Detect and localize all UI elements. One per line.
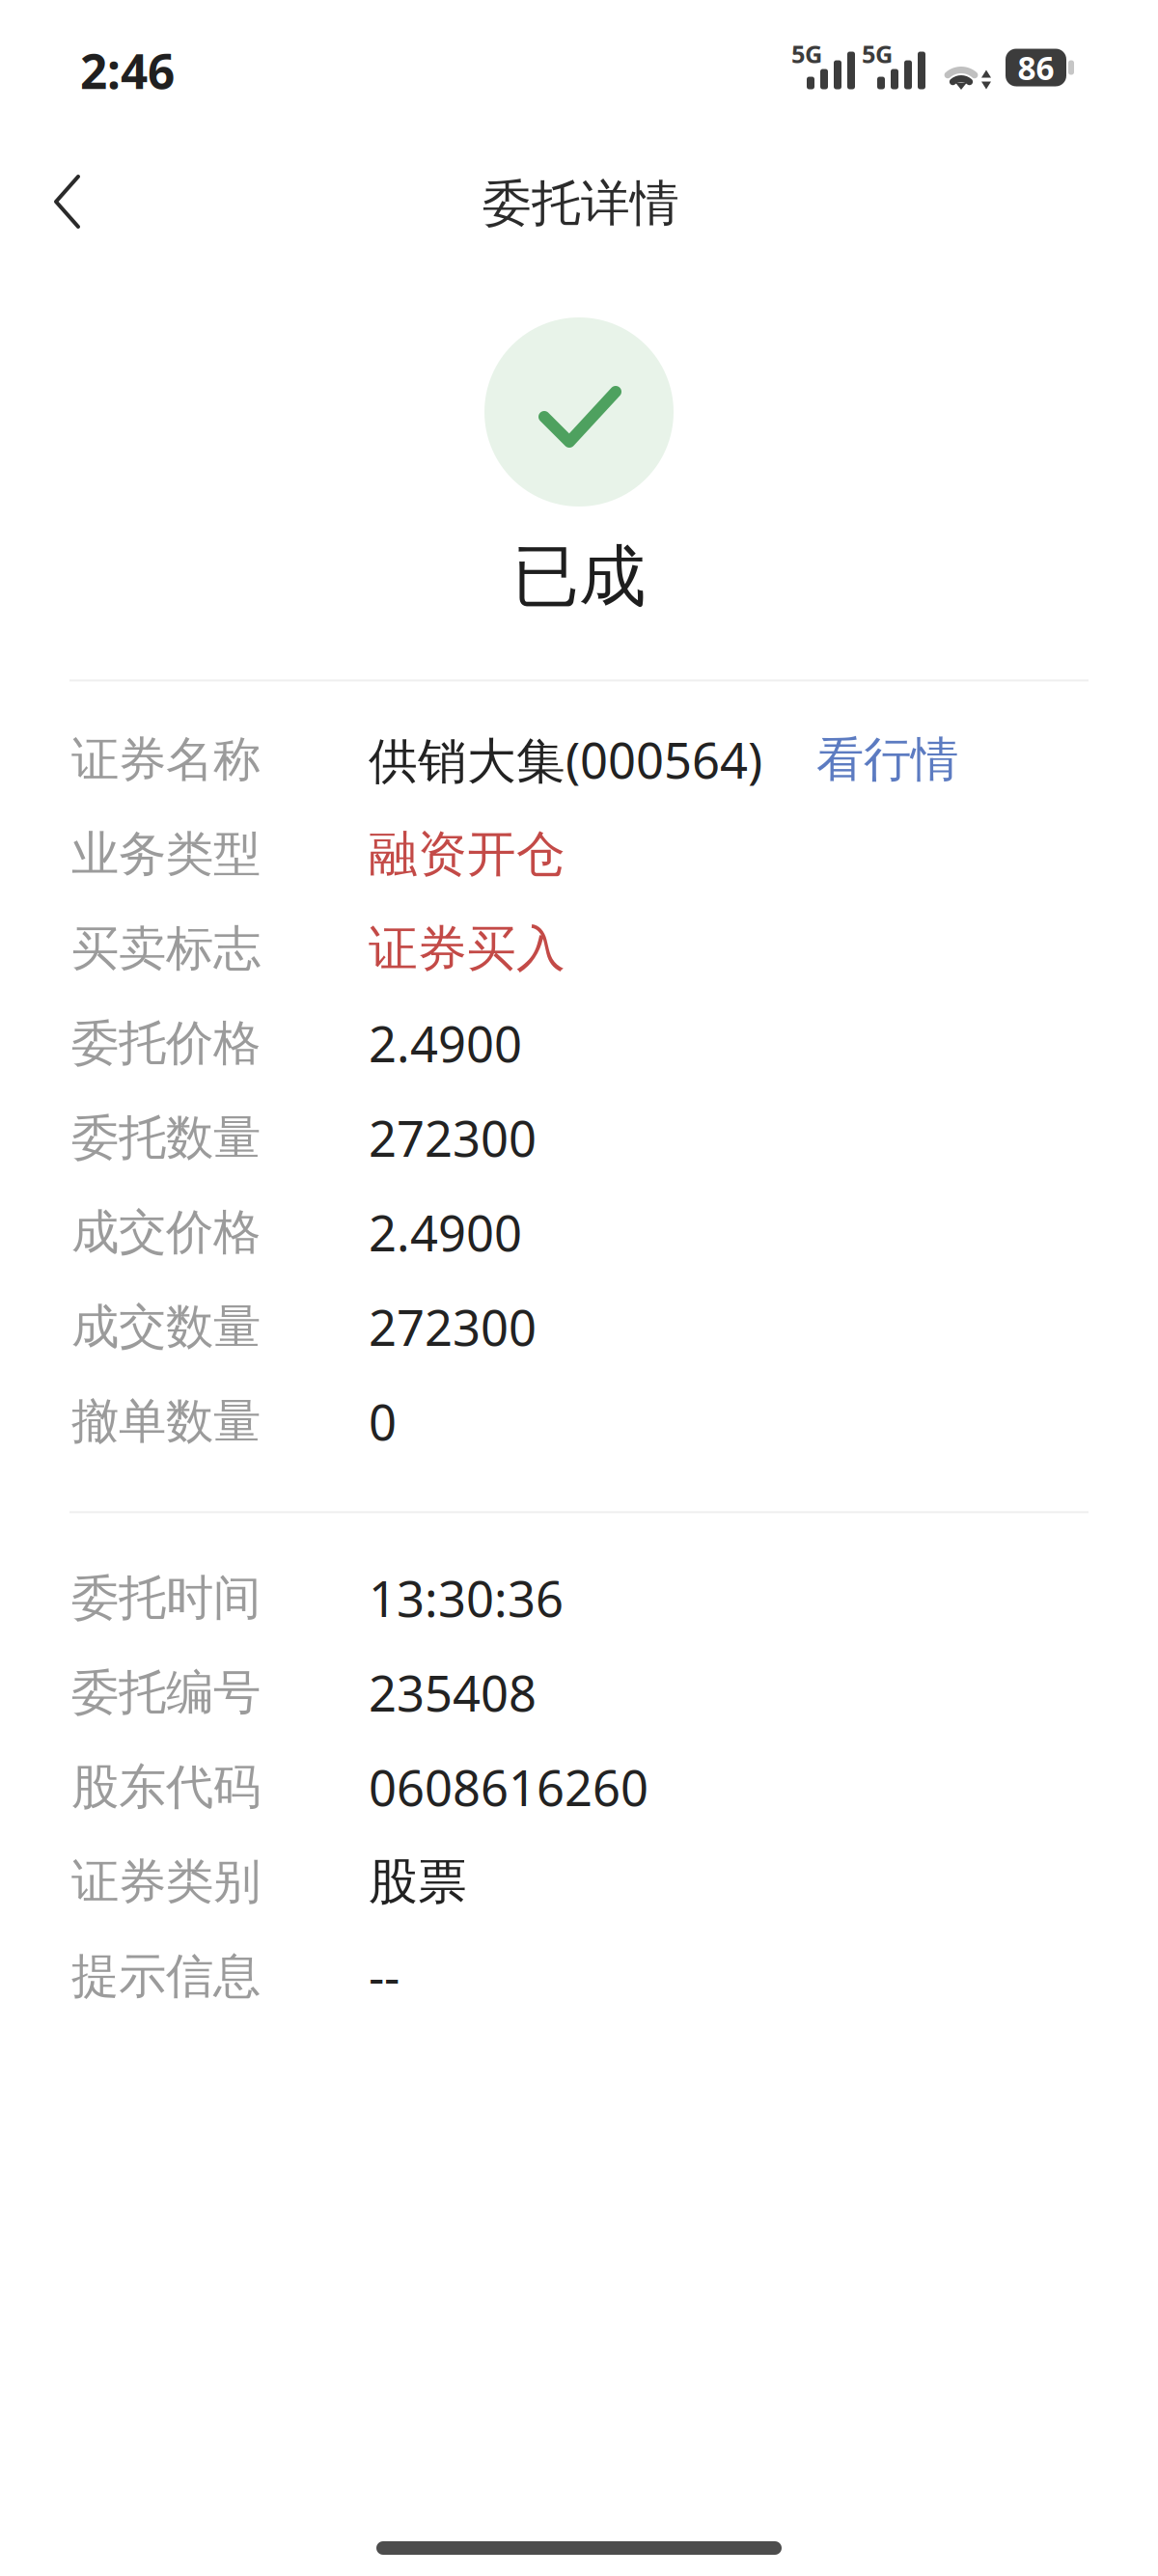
staticText: 提示信息 [71,1946,261,2006]
staticText: 2:46 [80,38,175,103]
staticText: 0608616260 [369,1754,648,1820]
staticText: 272300 [369,1104,537,1171]
staticText: 看行情 [816,730,958,790]
staticText: 证券名称 [71,730,261,790]
staticText: 股东代码 [71,1757,261,1817]
staticText: 272300 [369,1294,537,1360]
staticText: 委托数量 [71,1108,261,1168]
staticText: 成交数量 [71,1297,261,1357]
staticText: 业务类型 [71,824,261,884]
staticText: 0 [369,1388,397,1455]
staticText: 供销大集(000564) [369,726,762,793]
staticText: 股票 [369,1851,467,1912]
staticText: 证券买入 [369,918,565,979]
staticText: 5G [791,37,822,70]
staticText: 委托详情 [482,173,679,234]
staticText: 成交价格 [71,1202,261,1262]
staticText: 2.4900 [369,1010,522,1077]
staticText: 13:30:36 [369,1565,564,1631]
staticText: 5G [862,37,893,70]
staticText: 已成 [512,534,646,619]
staticText: 2.4900 [369,1199,522,1266]
button[interactable]: 看行情 [816,730,958,790]
staticText: 委托价格 [71,1013,261,1073]
staticText: 融资开仓 [369,823,565,885]
staticText: 证券类别 [71,1852,261,1912]
button[interactable]: 返回 [0,147,121,255]
staticText: 86 [1018,46,1054,89]
staticText: 委托编号 [71,1663,261,1723]
staticText: 235408 [369,1659,537,1726]
staticText: 撤单数量 [71,1392,261,1451]
staticText: 买卖标志 [71,919,261,979]
staticText: -- [369,1943,400,2009]
staticText: 委托时间 [71,1568,261,1628]
